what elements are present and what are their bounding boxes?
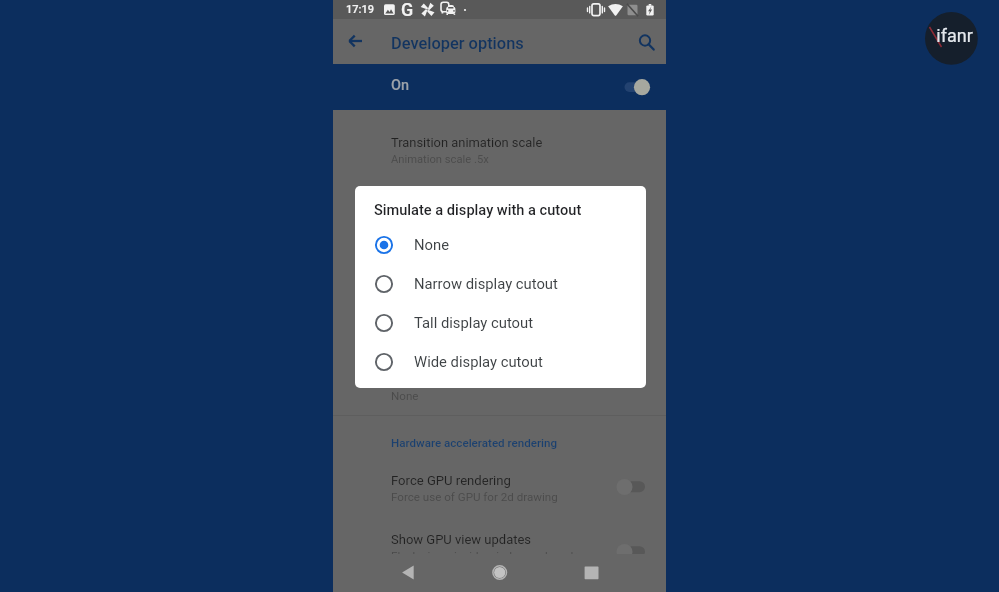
staticText: None (391, 389, 419, 403)
staticText: Simulate a display with a cutout (374, 201, 582, 218)
staticText: Show GPU view updates (391, 532, 532, 547)
button[interactable]: Back (397, 564, 419, 586)
button[interactable]: Back (344, 29, 368, 53)
button[interactable]: Home (488, 564, 510, 586)
staticText: Narrow display cutout (414, 275, 558, 292)
staticText: Tall display cutout (414, 314, 534, 331)
staticText: Hardware accelerated rendering (391, 436, 558, 450)
staticText: Transition animation scale (391, 135, 543, 150)
staticText: Force use of GPU for 2d drawing (391, 490, 558, 504)
staticText: None (414, 236, 450, 253)
staticText: Wide display cutout (414, 353, 543, 370)
button[interactable]: Tall display cutout (355, 303, 646, 342)
button[interactable]: Narrow display cutout (355, 264, 646, 303)
staticText: ifanr (936, 25, 973, 46)
button[interactable]: On (333, 64, 666, 110)
button[interactable]: None (355, 225, 646, 264)
button[interactable]: Recents (580, 564, 602, 586)
staticText: Force GPU rendering (391, 473, 511, 488)
staticText: Developer options (391, 34, 524, 53)
button[interactable]: Wide display cutout (355, 342, 646, 381)
button[interactable]: Search (633, 29, 657, 53)
staticText: On (391, 77, 410, 94)
staticText: G (401, 0, 414, 18)
staticText: Animation scale .5x (391, 153, 489, 166)
staticText: 17:19 (346, 3, 374, 16)
